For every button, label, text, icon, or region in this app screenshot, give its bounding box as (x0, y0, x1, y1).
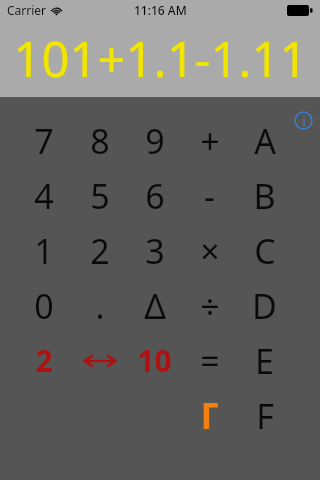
button[interactable]: Info (294, 111, 313, 130)
button[interactable]: C (237, 223, 292, 278)
staticText: Γ (200, 391, 220, 440)
button[interactable]: - (182, 168, 237, 223)
staticText: E (255, 338, 274, 384)
staticText: = (200, 338, 220, 384)
button[interactable]: D (237, 278, 292, 333)
staticText: 4 (34, 173, 54, 219)
button[interactable]: 2 (72, 223, 127, 278)
staticText: 10 (137, 340, 172, 381)
button[interactable]: Γ (182, 388, 237, 443)
staticText: Δ (144, 283, 166, 329)
staticText: 0 (34, 283, 54, 329)
button[interactable]: 9 (127, 113, 182, 168)
staticText: 2 (35, 340, 53, 381)
staticText: 1 (34, 228, 54, 274)
staticText: 7 (34, 118, 54, 164)
button[interactable]: 1 (16, 223, 72, 278)
staticText: × (200, 228, 220, 274)
staticText: 11:16 AM (134, 2, 187, 18)
button[interactable]: 4 (16, 168, 72, 223)
button[interactable]: B (237, 168, 292, 223)
staticText: 9 (145, 118, 165, 164)
button[interactable]: 7 (16, 113, 72, 168)
staticText: + (200, 118, 220, 164)
button[interactable]: Swap base (72, 333, 127, 388)
staticText: 5 (90, 173, 110, 219)
staticText: C (254, 228, 276, 274)
staticText: B (253, 173, 276, 219)
staticText: F (256, 393, 274, 439)
staticText: Carrier (7, 2, 47, 18)
staticText: 6 (145, 173, 165, 219)
staticText: D (252, 283, 277, 329)
button[interactable]: 5 (72, 168, 127, 223)
button[interactable]: 0 (16, 278, 72, 333)
staticText: 8 (90, 118, 110, 164)
button[interactable]: E (237, 333, 292, 388)
staticText: i (302, 113, 306, 129)
staticText: A (254, 118, 276, 164)
staticText: 2 (90, 228, 110, 274)
button[interactable]: 3 (127, 223, 182, 278)
button[interactable]: 10 (127, 333, 182, 388)
button[interactable]: 8 (72, 113, 127, 168)
button[interactable]: × (182, 223, 237, 278)
button[interactable]: 2 (16, 333, 72, 388)
button[interactable]: F (237, 388, 292, 443)
button[interactable]: ÷ (182, 278, 237, 333)
staticText: 3 (145, 228, 165, 274)
staticText: . (95, 283, 105, 329)
button[interactable]: Δ (127, 278, 182, 333)
staticText: - (204, 173, 215, 219)
button[interactable]: + (182, 113, 237, 168)
button[interactable]: A (237, 113, 292, 168)
button[interactable]: = (182, 333, 237, 388)
button[interactable]: . (72, 278, 127, 333)
staticText: ÷ (200, 283, 220, 329)
staticText: 101+1.1-1.11 (13, 25, 308, 92)
button[interactable]: 6 (127, 168, 182, 223)
